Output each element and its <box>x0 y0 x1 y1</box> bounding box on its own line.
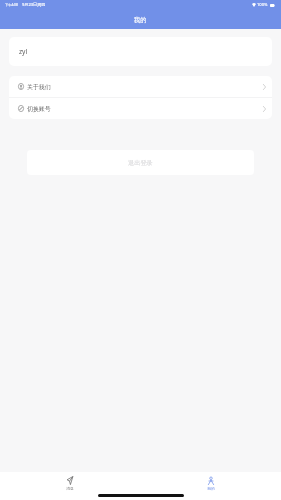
staticText: 消息 <box>66 486 74 491</box>
staticText: 切换账号 <box>27 105 51 112</box>
staticText: 退出登录 <box>128 159 153 167</box>
staticText: 9月23日周四 <box>22 2 46 8</box>
button[interactable]: 消息 <box>0 472 140 494</box>
button[interactable]: zyl <box>9 37 272 66</box>
staticText: 关于我们 <box>27 83 51 90</box>
staticText: 我的 <box>207 486 215 491</box>
staticText: 100% <box>257 2 268 8</box>
staticText: 下午4:08 <box>5 3 18 7</box>
button[interactable]: 我的 <box>140 472 281 494</box>
button[interactable]: 切换账号 <box>9 98 272 119</box>
staticText: zyl <box>19 47 28 56</box>
button[interactable]: 关于我们 <box>9 76 272 97</box>
staticText: 我的 <box>134 16 147 24</box>
